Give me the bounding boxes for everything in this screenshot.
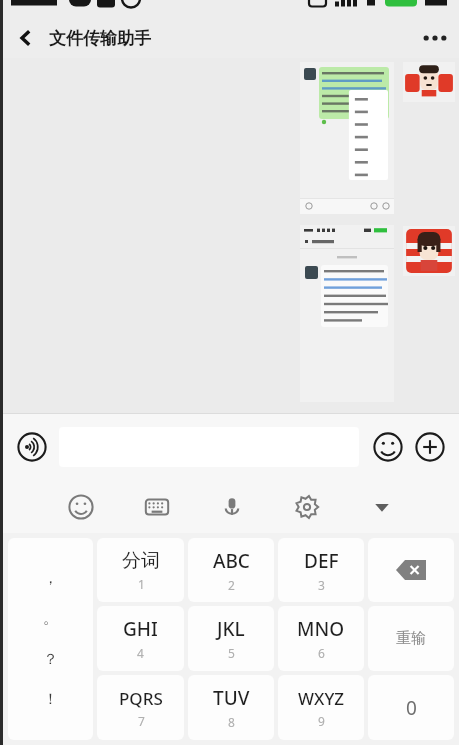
button[interactable]: Back bbox=[3, 18, 49, 58]
button[interactable]: More functions bbox=[413, 430, 447, 464]
staticText: DEF bbox=[304, 548, 339, 574]
staticText: 1 bbox=[138, 576, 145, 592]
button[interactable]: 0 bbox=[368, 675, 454, 740]
button[interactable]: Keyboard layout bbox=[119, 481, 194, 533]
button[interactable]: TUV bbox=[188, 675, 274, 740]
button[interactable]: ， bbox=[8, 538, 93, 740]
button[interactable]: 重输 bbox=[368, 606, 454, 671]
staticText: 。 bbox=[43, 609, 58, 628]
staticText: 文件传输助手 bbox=[49, 28, 151, 49]
staticText: WXYZ bbox=[298, 687, 345, 710]
staticText: 7 bbox=[138, 713, 145, 729]
staticText: 3 bbox=[318, 577, 325, 593]
staticText: JKL bbox=[217, 616, 245, 642]
button[interactable]: Sticker bbox=[403, 62, 455, 102]
staticText: 6 bbox=[318, 645, 325, 661]
staticText: MNO bbox=[297, 616, 345, 642]
staticText: GHI bbox=[123, 616, 158, 642]
button[interactable]: Chat screenshot image bbox=[300, 225, 394, 402]
staticText: ？ bbox=[43, 650, 58, 669]
button[interactable]: MNO bbox=[278, 606, 364, 671]
button[interactable]: More options bbox=[411, 18, 459, 58]
button[interactable]: Settings bbox=[269, 481, 344, 533]
button[interactable]: Hide keyboard bbox=[344, 481, 419, 533]
staticText: 分词 bbox=[122, 549, 160, 573]
staticText: PQRS bbox=[119, 687, 163, 710]
button[interactable]: Voice message bbox=[15, 430, 49, 464]
button[interactable]: Emoji keyboard bbox=[43, 481, 119, 533]
staticText: 5 bbox=[228, 645, 235, 661]
button[interactable]: ABC bbox=[188, 538, 274, 602]
staticText: 8 bbox=[228, 714, 235, 730]
staticText: 2 bbox=[228, 577, 235, 593]
staticText: ， bbox=[43, 569, 58, 588]
button[interactable]: GHI bbox=[97, 606, 184, 671]
button[interactable]: Backspace bbox=[368, 538, 454, 602]
button[interactable]: Voice input bbox=[194, 481, 269, 533]
button[interactable]: PQRS bbox=[97, 675, 184, 740]
button[interactable]: Emoji bbox=[371, 430, 405, 464]
button[interactable]: JKL bbox=[188, 606, 274, 671]
staticText: 9 bbox=[318, 713, 325, 729]
staticText: TUV bbox=[213, 685, 250, 711]
staticText: 4 bbox=[137, 645, 144, 661]
staticText: ！ bbox=[43, 690, 58, 709]
staticText: 重输 bbox=[396, 629, 426, 648]
button[interactable]: Chat screenshot image bbox=[300, 62, 394, 214]
button[interactable]: Sticker bbox=[403, 226, 455, 276]
button[interactable]: 分词 bbox=[97, 538, 184, 602]
staticText: 0 bbox=[406, 695, 417, 721]
button[interactable]: DEF bbox=[278, 538, 364, 602]
staticText: ABC bbox=[213, 548, 250, 574]
button[interactable]: WXYZ bbox=[278, 675, 364, 740]
